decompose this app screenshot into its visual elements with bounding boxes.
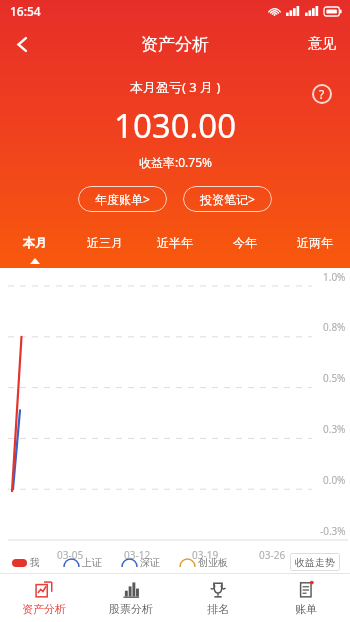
- button[interactable]: 资产分析: [0, 574, 87, 622]
- staticText: 近两年: [297, 235, 333, 250]
- staticText: 股票分析: [109, 602, 153, 616]
- button[interactable]: 本月: [0, 228, 70, 256]
- staticText: 意见: [308, 35, 336, 53]
- staticText: 资产分析: [22, 602, 66, 616]
- staticText: 近三月: [87, 235, 123, 250]
- staticText: 账单: [295, 602, 317, 616]
- button[interactable]: 投资笔记>: [183, 186, 272, 212]
- button[interactable]: 股票分析: [87, 574, 174, 622]
- staticText: 0.3%: [323, 422, 346, 436]
- staticText: 资产分析: [141, 34, 209, 55]
- staticText: 收益率:0.75%: [139, 154, 212, 170]
- staticText: 我: [30, 556, 40, 569]
- staticText: 1030.00: [114, 103, 237, 148]
- button[interactable]: 年度账单>: [78, 186, 167, 212]
- button[interactable]: 创业板: [180, 556, 228, 569]
- button[interactable]: 我: [12, 556, 40, 569]
- staticText: 创业板: [198, 556, 228, 569]
- button[interactable]: 上证: [64, 556, 102, 569]
- staticText: 16:54: [10, 3, 41, 19]
- staticText: 0.5%: [323, 371, 346, 385]
- staticText: 年度账单>: [95, 191, 150, 207]
- staticText: 收益走势: [295, 556, 335, 569]
- staticText: 0.0%: [323, 473, 346, 487]
- staticText: 0.8%: [323, 320, 346, 334]
- staticText: 本月: [23, 235, 47, 250]
- button[interactable]: 深证: [122, 556, 160, 569]
- staticText: 本月盈亏( 3 月 ): [130, 78, 221, 96]
- staticText: 深证: [140, 556, 160, 569]
- staticText: 03-05: [57, 548, 84, 562]
- button[interactable]: Back: [0, 22, 44, 66]
- staticText: 投资笔记>: [200, 191, 255, 207]
- button[interactable]: Help: [306, 78, 338, 110]
- staticText: 03-12: [124, 548, 151, 562]
- staticText: 1.0%: [323, 270, 346, 284]
- button[interactable]: 意见: [294, 22, 350, 66]
- staticText: 排名: [207, 602, 229, 616]
- staticText: ?: [319, 86, 325, 102]
- button[interactable]: 排名: [174, 574, 262, 622]
- staticText: 03-19: [192, 548, 219, 562]
- button[interactable]: 近三月: [70, 228, 140, 256]
- staticText: 近半年: [157, 235, 193, 250]
- button[interactable]: 收益走势: [290, 553, 340, 571]
- button[interactable]: 近两年: [280, 228, 350, 256]
- button[interactable]: 账单: [262, 574, 350, 622]
- staticText: 03-26: [259, 548, 286, 562]
- staticText: 上证: [82, 556, 102, 569]
- staticText: -0.3%: [320, 524, 346, 538]
- staticText: 今年: [233, 235, 257, 250]
- button[interactable]: 近半年: [140, 228, 210, 256]
- button[interactable]: 今年: [210, 228, 280, 256]
